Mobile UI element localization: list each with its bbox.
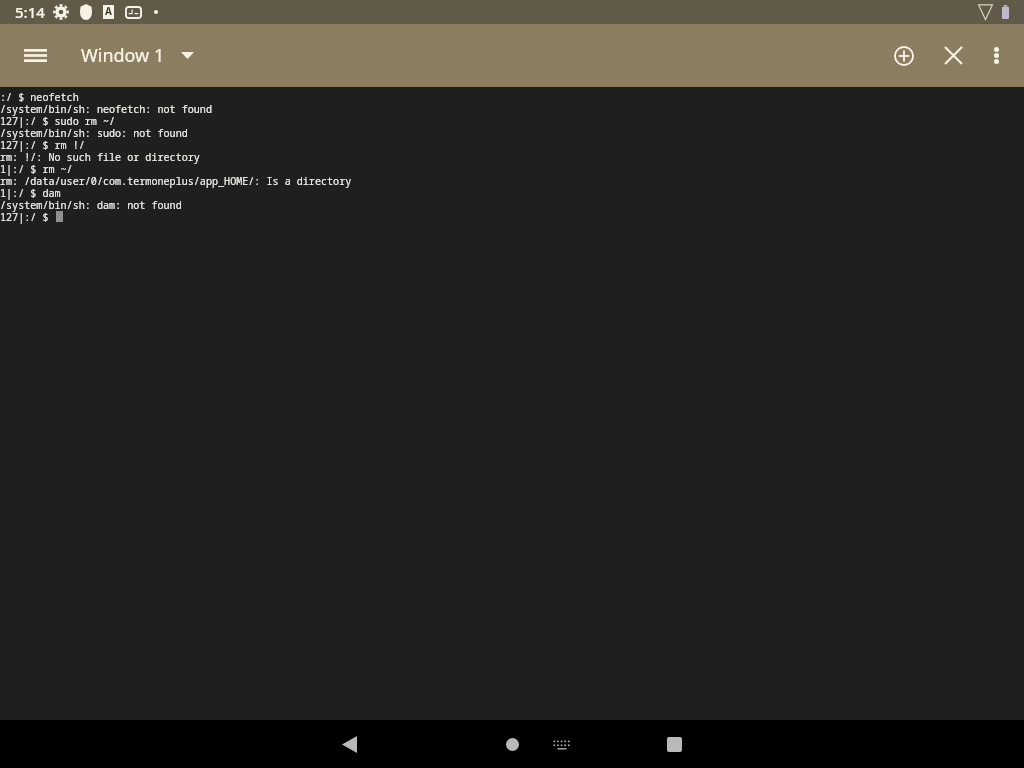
staticText: 127|:/ $ rm !/ <box>0 138 85 150</box>
staticText: rm: !/: No such file or directory <box>0 150 200 162</box>
staticText: 5:14 <box>15 2 45 22</box>
button[interactable]: Window 1 <box>81 24 202 87</box>
staticText: Window 1 <box>81 43 165 68</box>
staticText: A <box>105 4 112 18</box>
staticText: /system/bin/sh: neofetch: not found <box>0 102 212 114</box>
button[interactable]: Add new window <box>884 24 924 87</box>
staticText: 127|:/ $ <box>0 210 55 222</box>
button[interactable]: Home <box>488 720 536 768</box>
button[interactable]: Show keyboard <box>538 720 586 768</box>
staticText: rm: /data/user/0/com.termoneplus/app_HOM… <box>0 174 352 186</box>
button[interactable]: Navigation menu <box>0 24 71 87</box>
staticText: 127|:/ $ sudo rm ~/ <box>0 114 116 126</box>
staticText: 1|:/ $ dam <box>0 186 61 198</box>
staticText: /system/bin/sh: dam: not found <box>0 198 182 210</box>
button[interactable]: More options <box>978 24 1014 87</box>
button[interactable]: Terminal output <box>0 0 1024 768</box>
button[interactable]: Back <box>325 720 373 768</box>
staticText: /system/bin/sh: sudo: not found <box>0 126 188 138</box>
staticText: :/ $ neofetch <box>0 90 79 102</box>
button[interactable]: Recent apps <box>650 720 698 768</box>
staticText: 1|:/ $ rm ~/ <box>0 162 73 174</box>
button[interactable]: Close window <box>934 24 972 87</box>
